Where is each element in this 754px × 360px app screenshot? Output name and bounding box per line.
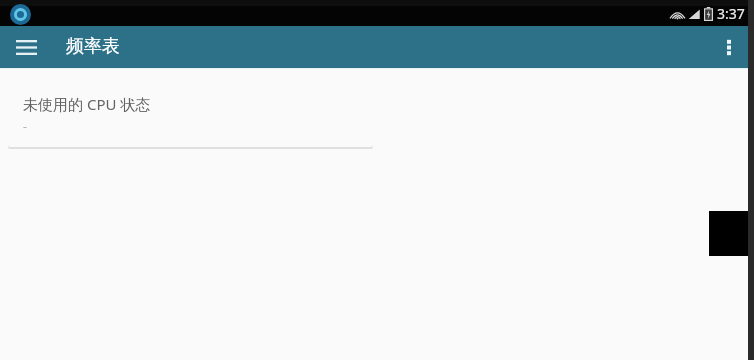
staticText: 未使用的 CPU 状态 xyxy=(23,94,151,114)
button[interactable]: Open navigation menu xyxy=(8,29,44,65)
button[interactable]: More options xyxy=(711,29,747,65)
staticText: 3:37 xyxy=(717,4,745,23)
button[interactable]: 未使用的 CPU 状态 xyxy=(8,73,373,147)
staticText: 频率表 xyxy=(66,35,120,58)
staticText: - xyxy=(23,118,27,134)
